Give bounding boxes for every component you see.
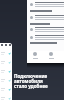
button[interactable]: Status xyxy=(1,67,11,76)
button[interactable]: Item xyxy=(30,35,64,40)
button[interactable]: Home xyxy=(27,51,43,63)
other: Item xyxy=(30,36,33,39)
other: Item xyxy=(30,28,33,31)
button[interactable]: Status xyxy=(1,85,11,94)
other: Item xyxy=(30,16,33,19)
button[interactable]: Item xyxy=(30,15,64,20)
other: Status xyxy=(8,79,11,82)
staticText: Подключение автомобиля стало удобнее xyxy=(14,73,48,90)
button[interactable]: Status xyxy=(1,58,11,67)
button[interactable]: Item xyxy=(30,2,64,7)
button[interactable]: Status xyxy=(1,94,11,100)
button[interactable]: Status xyxy=(1,49,11,58)
button[interactable]: Status xyxy=(1,76,11,85)
button[interactable]: Item xyxy=(30,27,64,32)
button[interactable]: Car xyxy=(43,51,59,63)
other: Status xyxy=(8,61,11,64)
other: Status xyxy=(8,97,11,100)
other: Status xyxy=(8,52,11,55)
other: Status xyxy=(8,70,11,73)
other: Status xyxy=(8,88,11,91)
other: Item xyxy=(30,3,33,6)
